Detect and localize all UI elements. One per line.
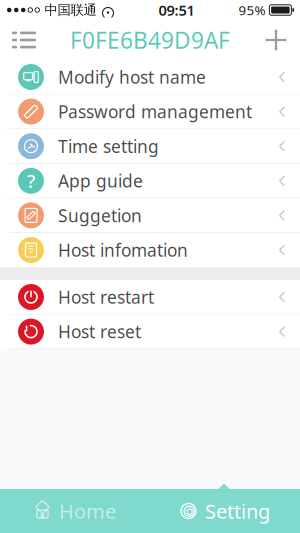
button[interactable]: ? <box>0 164 300 198</box>
staticText: F0FE6B49D9AF <box>70 25 230 55</box>
button[interactable]: Host infomation <box>0 233 300 267</box>
staticText: Time setting <box>58 135 159 158</box>
button[interactable]: Password management <box>0 95 300 129</box>
button[interactable]: Host reset <box>0 315 300 349</box>
button[interactable]: Home <box>0 489 150 533</box>
staticText: Host infomation <box>58 238 188 261</box>
staticText: 09:51 <box>158 0 194 20</box>
staticText: Password management <box>58 100 252 123</box>
staticText: Home <box>59 498 116 524</box>
button[interactable]: Time setting <box>0 129 300 163</box>
button[interactable]: Suggetion <box>0 198 300 232</box>
button[interactable]: Setting <box>150 489 300 533</box>
button[interactable]: Add <box>252 20 300 60</box>
button[interactable]: Modify host name <box>0 60 300 94</box>
staticText: Suggetion <box>58 204 142 227</box>
staticText: Host reset <box>58 320 141 343</box>
staticText: Host restart <box>58 285 154 308</box>
staticText: 中国联通 <box>44 2 96 18</box>
staticText: App guide <box>58 169 143 192</box>
staticText: Setting <box>205 498 270 524</box>
staticText: Modify host name <box>58 65 206 88</box>
staticText: ? <box>27 168 35 193</box>
button[interactable]: Host restart <box>0 280 300 314</box>
staticText: 95% <box>238 1 265 19</box>
button[interactable]: Menu <box>0 20 48 60</box>
